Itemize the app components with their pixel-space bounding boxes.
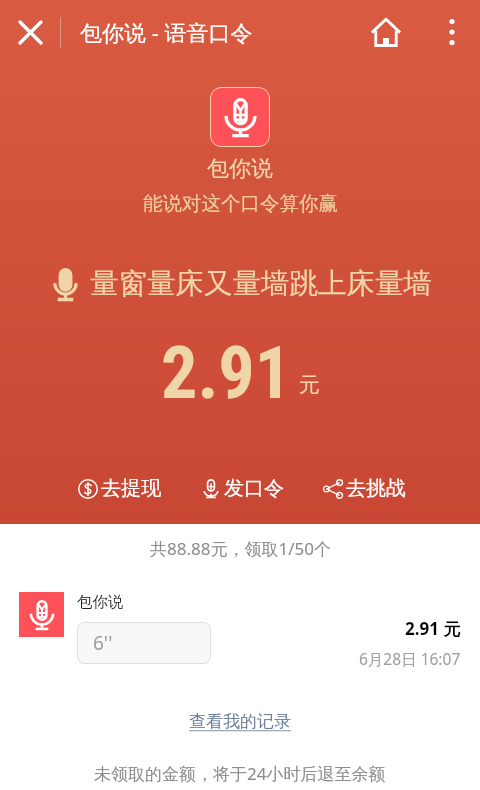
button[interactable]: 去挑战 bbox=[323, 470, 406, 507]
staticText: 未领取的金额，将于24小时后退至余额 bbox=[94, 762, 386, 785]
staticText: 能说对这个口令算你赢 bbox=[143, 191, 338, 216]
button[interactable]: Home bbox=[358, 4, 414, 60]
button[interactable]: More options bbox=[431, 4, 473, 60]
button[interactable]: 查看我的记录 bbox=[189, 711, 291, 732]
staticText: 发口令 bbox=[224, 476, 284, 501]
staticText: 包你说 - 语音口令 bbox=[80, 17, 253, 47]
staticText: 6'' bbox=[93, 630, 113, 656]
staticText: 2.91 元 bbox=[405, 617, 461, 640]
staticText: 包你说 bbox=[207, 155, 273, 183]
staticText: 元 bbox=[299, 372, 320, 398]
button[interactable]: Close bbox=[0, 0, 60, 64]
button[interactable]: Play voice message bbox=[77, 622, 211, 664]
staticText: 查看我的记录 bbox=[189, 711, 291, 732]
button[interactable]: 包你说 logo bbox=[210, 87, 270, 147]
staticText: 6月28日 16:07 bbox=[359, 648, 461, 669]
button[interactable]: 发口令 bbox=[201, 470, 284, 507]
staticText: 2.91 bbox=[161, 331, 292, 415]
button[interactable]: 去提现 bbox=[78, 470, 161, 507]
staticText: 包你说 bbox=[77, 592, 124, 612]
staticText: 去挑战 bbox=[346, 476, 406, 501]
staticText: 量窗量床又量墙跳上床量墙 bbox=[90, 266, 432, 302]
staticText: 去提现 bbox=[101, 476, 161, 501]
staticText: 共88.88元，领取1/50个 bbox=[150, 537, 331, 560]
